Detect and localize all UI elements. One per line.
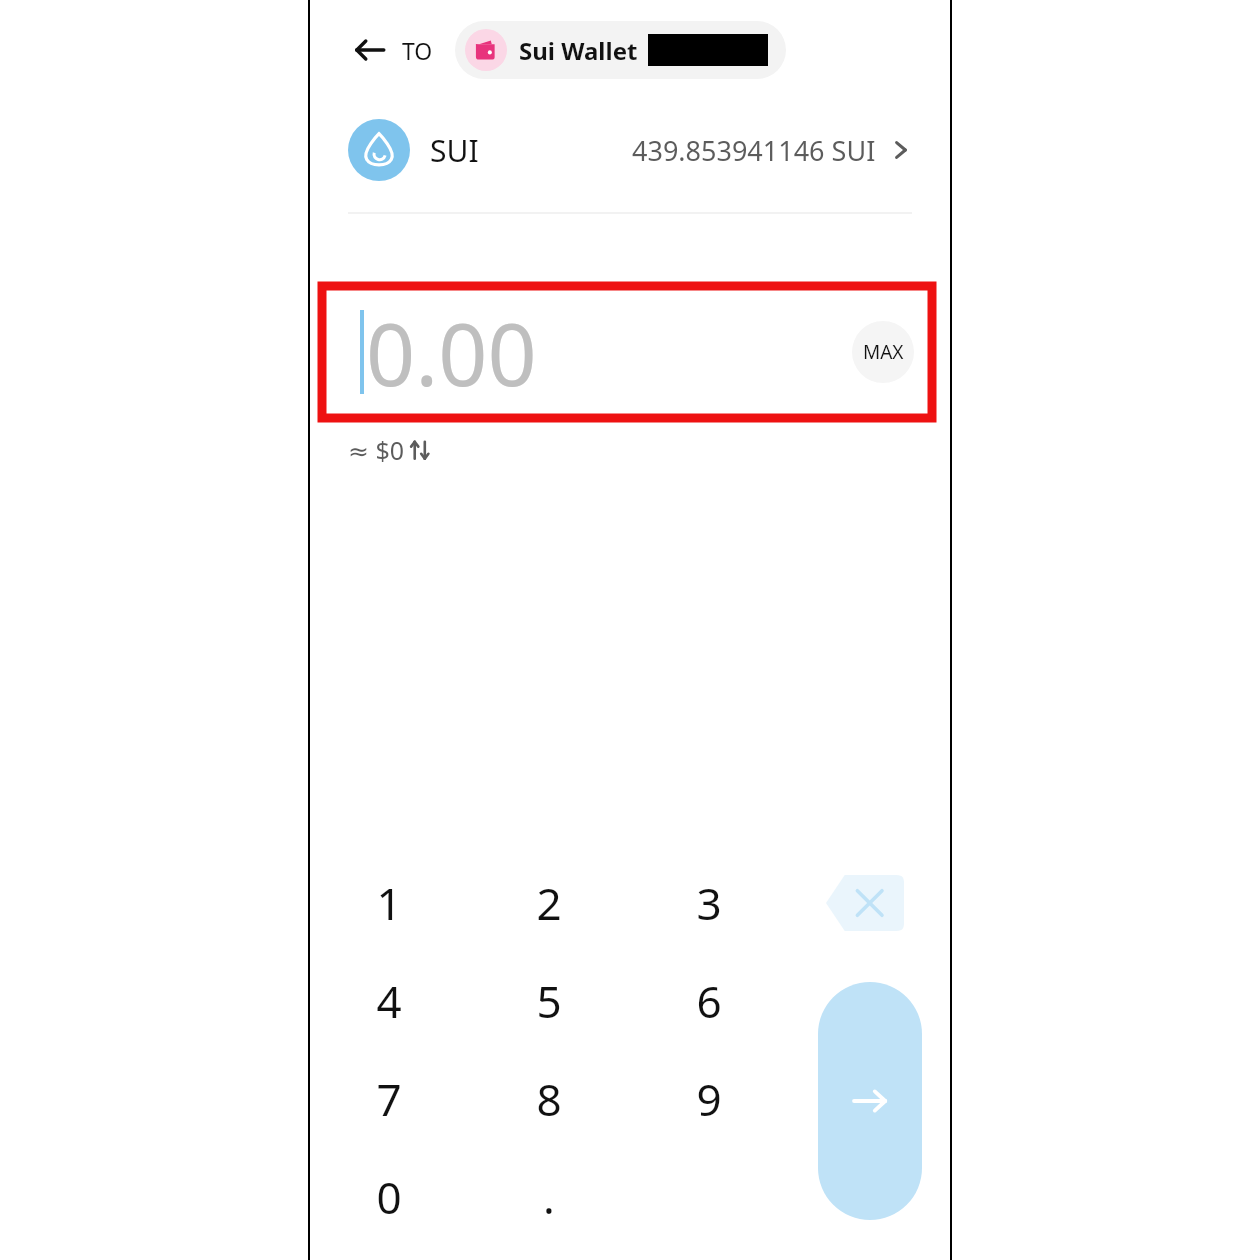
- button[interactable]: 3: [654, 859, 764, 947]
- staticText: 1: [376, 873, 402, 933]
- staticText: 3: [696, 873, 722, 933]
- button[interactable]: Sui Wallet: [455, 21, 786, 79]
- button[interactable]: .: [494, 1153, 604, 1241]
- staticText: .: [543, 1167, 555, 1227]
- staticText: Sui Wallet: [519, 34, 638, 67]
- button[interactable]: 8: [494, 1055, 604, 1143]
- staticText: 5: [536, 971, 562, 1031]
- staticText: 4: [376, 971, 402, 1031]
- staticText: ≈ $0: [348, 433, 405, 467]
- staticText: 6: [696, 971, 722, 1031]
- staticText: TO: [402, 35, 433, 66]
- button[interactable]: 1: [334, 859, 444, 947]
- button[interactable]: MAX: [852, 321, 914, 383]
- button[interactable]: SUI: [348, 112, 912, 188]
- staticText: 7: [376, 1069, 402, 1129]
- staticText: 439.853941146 SUI: [632, 132, 876, 169]
- button[interactable]: 7: [334, 1055, 444, 1143]
- staticText: 8: [536, 1069, 562, 1129]
- button[interactable]: Continue: [818, 982, 922, 1220]
- staticText: SUI: [430, 130, 479, 171]
- button[interactable]: 2: [494, 859, 604, 947]
- staticText: 2: [536, 873, 562, 933]
- button[interactable]: 5: [494, 957, 604, 1045]
- button[interactable]: 0.00: [322, 286, 932, 418]
- button[interactable]: Back: [348, 28, 392, 72]
- button[interactable]: 4: [334, 957, 444, 1045]
- button[interactable]: 0: [334, 1153, 444, 1241]
- staticText: MAX: [863, 339, 904, 365]
- button[interactable]: 9: [654, 1055, 764, 1143]
- button[interactable]: ≈ $0: [348, 430, 432, 470]
- staticText: 0.00: [366, 294, 537, 411]
- staticText: 9: [696, 1069, 722, 1129]
- staticText: 0: [376, 1167, 402, 1227]
- button[interactable]: 6: [654, 957, 764, 1045]
- button[interactable]: Backspace: [815, 866, 915, 940]
